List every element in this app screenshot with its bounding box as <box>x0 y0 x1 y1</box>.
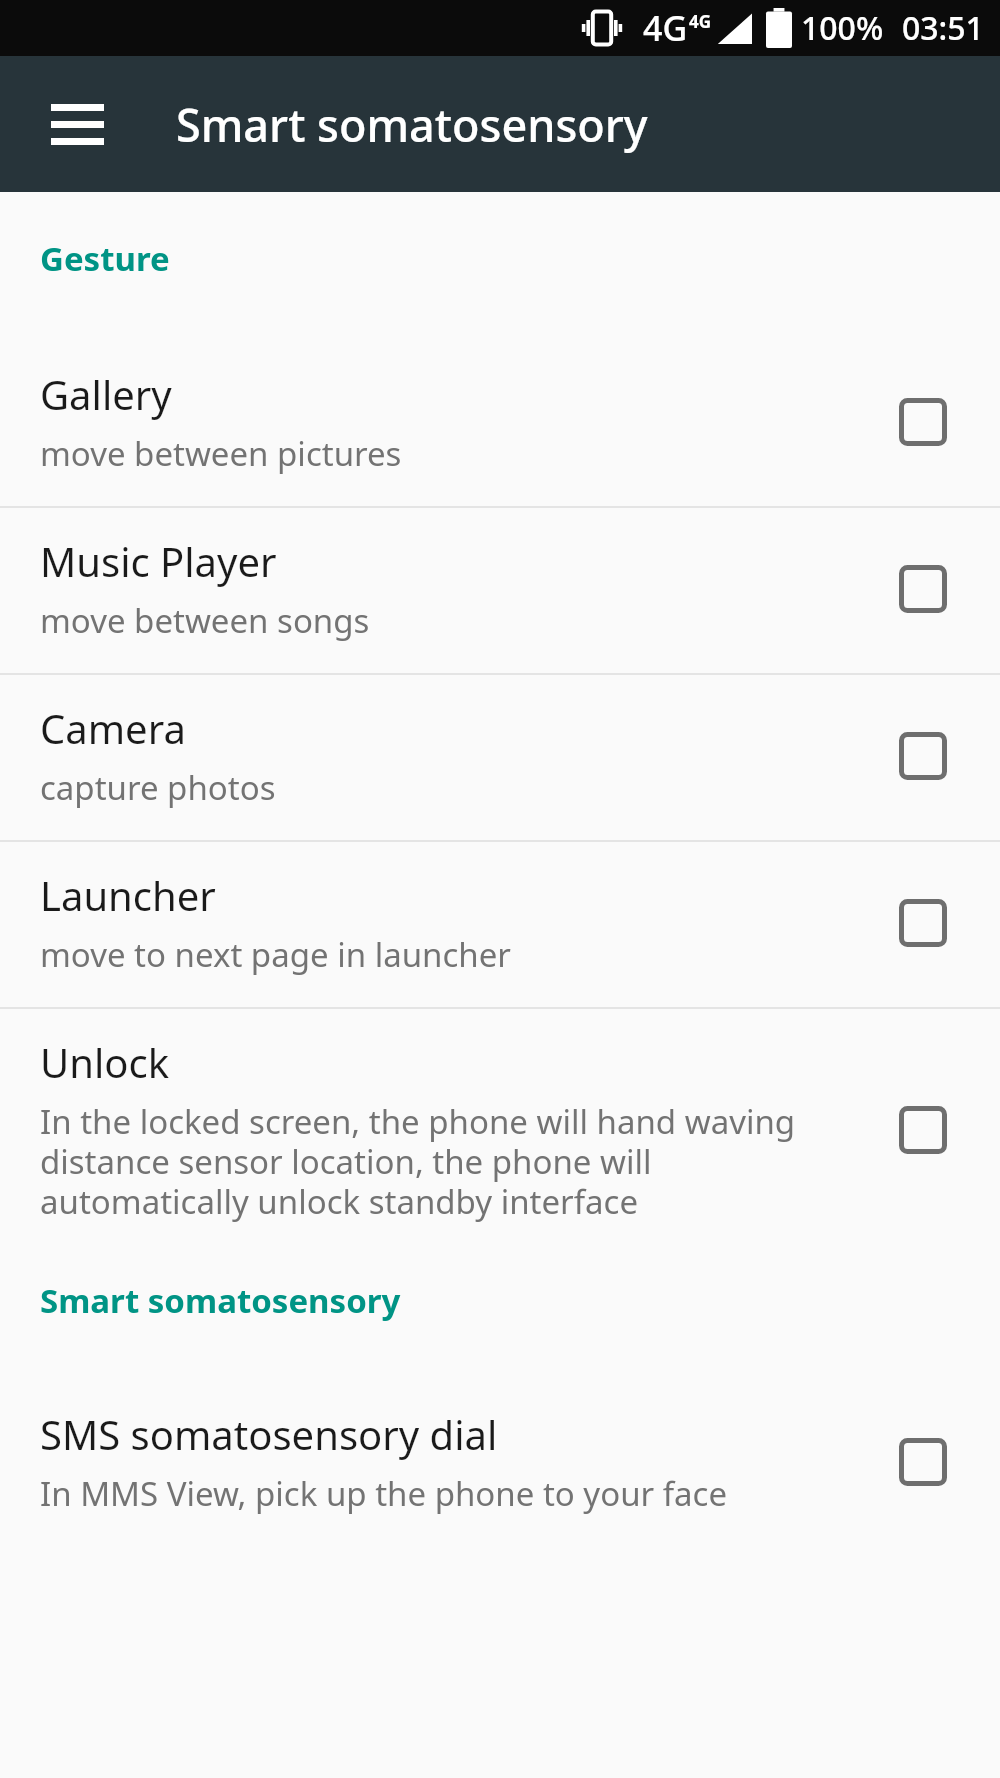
staticText: Camera <box>40 701 186 755</box>
staticText: 4G <box>689 10 712 33</box>
button[interactable]: SMS somatosensory dial <box>0 1381 1000 1546</box>
button[interactable]: Open navigation menu <box>30 77 124 171</box>
staticText: capture photos <box>40 765 276 810</box>
button[interactable]: Toggle setting <box>886 886 960 960</box>
staticText: Gesture <box>40 236 1000 281</box>
staticText: 03:51 <box>902 6 984 50</box>
button[interactable]: Music Player <box>0 508 1000 673</box>
staticText: 4G <box>643 5 688 51</box>
button[interactable]: Gallery <box>0 341 1000 506</box>
staticText: Smart somatosensory <box>40 1278 1000 1323</box>
staticText: In MMS View, pick up the phone to your f… <box>40 1471 728 1516</box>
staticText: 100% <box>801 6 884 50</box>
staticText: move to next page in launcher <box>40 932 511 977</box>
button[interactable]: Toggle setting <box>886 1425 960 1499</box>
staticText: Music Player <box>40 534 277 588</box>
staticText: Unlock <box>40 1035 170 1089</box>
staticText: move between pictures <box>40 431 402 476</box>
button[interactable]: Toggle setting <box>886 719 960 793</box>
button[interactable]: Toggle setting <box>886 385 960 459</box>
staticText: move between songs <box>40 598 370 643</box>
staticText: Gallery <box>40 367 172 421</box>
button[interactable]: Camera <box>0 675 1000 840</box>
button[interactable]: Toggle setting <box>886 1093 960 1167</box>
staticText: Launcher <box>40 868 216 922</box>
staticText: In the locked screen, the phone will han… <box>40 1099 862 1224</box>
button[interactable]: Launcher <box>0 842 1000 1007</box>
staticText: Smart somatosensory <box>176 94 648 155</box>
button[interactable]: Unlock <box>0 1009 1000 1254</box>
staticText: SMS somatosensory dial <box>40 1407 498 1461</box>
button[interactable]: Toggle setting <box>886 552 960 626</box>
